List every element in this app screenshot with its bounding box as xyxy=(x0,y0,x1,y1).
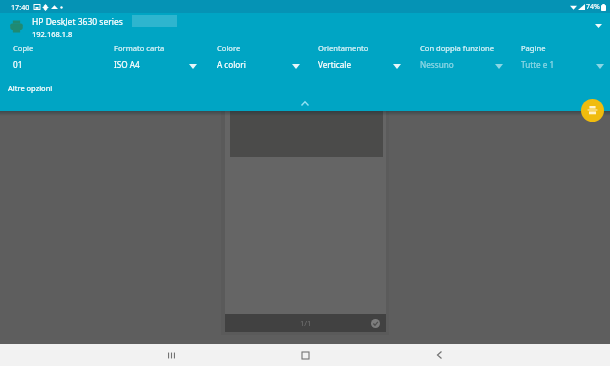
staticText: Copie xyxy=(13,43,34,53)
staticText: A colori xyxy=(217,59,246,70)
staticText: 01 xyxy=(13,59,23,70)
staticText: 17:40 xyxy=(11,2,30,12)
button[interactable]: Stampa xyxy=(581,99,604,122)
button[interactable]: Indietro xyxy=(417,344,461,366)
staticText: 1/1 xyxy=(300,318,312,328)
staticText: Colore xyxy=(217,43,241,53)
button[interactable]: Scegli stampante xyxy=(587,15,609,37)
button[interactable]: Pagine xyxy=(515,42,604,78)
button[interactable]: Colore xyxy=(211,42,312,78)
staticText: Tutte e 1 xyxy=(521,59,555,70)
staticText: Orientamento xyxy=(318,43,369,53)
button[interactable]: Recenti xyxy=(149,344,193,366)
button[interactable]: Copie xyxy=(7,42,108,78)
button[interactable]: Comprimi xyxy=(289,95,321,111)
staticText: Verticale xyxy=(318,59,352,70)
button[interactable]: HP DeskJet 3630 series xyxy=(0,13,610,47)
staticText: Pagine xyxy=(521,43,546,53)
button[interactable]: Altre opzioni xyxy=(2,80,59,96)
button[interactable]: Formato carta xyxy=(108,42,209,78)
button[interactable]: Orientamento xyxy=(312,42,413,78)
staticText: ISO A4 xyxy=(114,59,140,70)
button[interactable]: Seleziona pagina xyxy=(368,316,382,330)
staticText: Formato carta xyxy=(114,43,165,53)
button[interactable]: Home xyxy=(283,344,327,366)
staticText: Altre opzioni xyxy=(8,83,53,93)
staticText: Con doppia funzione xyxy=(420,43,494,53)
staticText: 74% xyxy=(586,2,600,12)
staticText: Nessuno xyxy=(420,59,454,70)
staticText: HP DeskJet 3630 series xyxy=(32,16,123,28)
button[interactable]: Con doppia funzione xyxy=(414,42,515,78)
staticText: 192.168.1.8 xyxy=(32,29,73,39)
